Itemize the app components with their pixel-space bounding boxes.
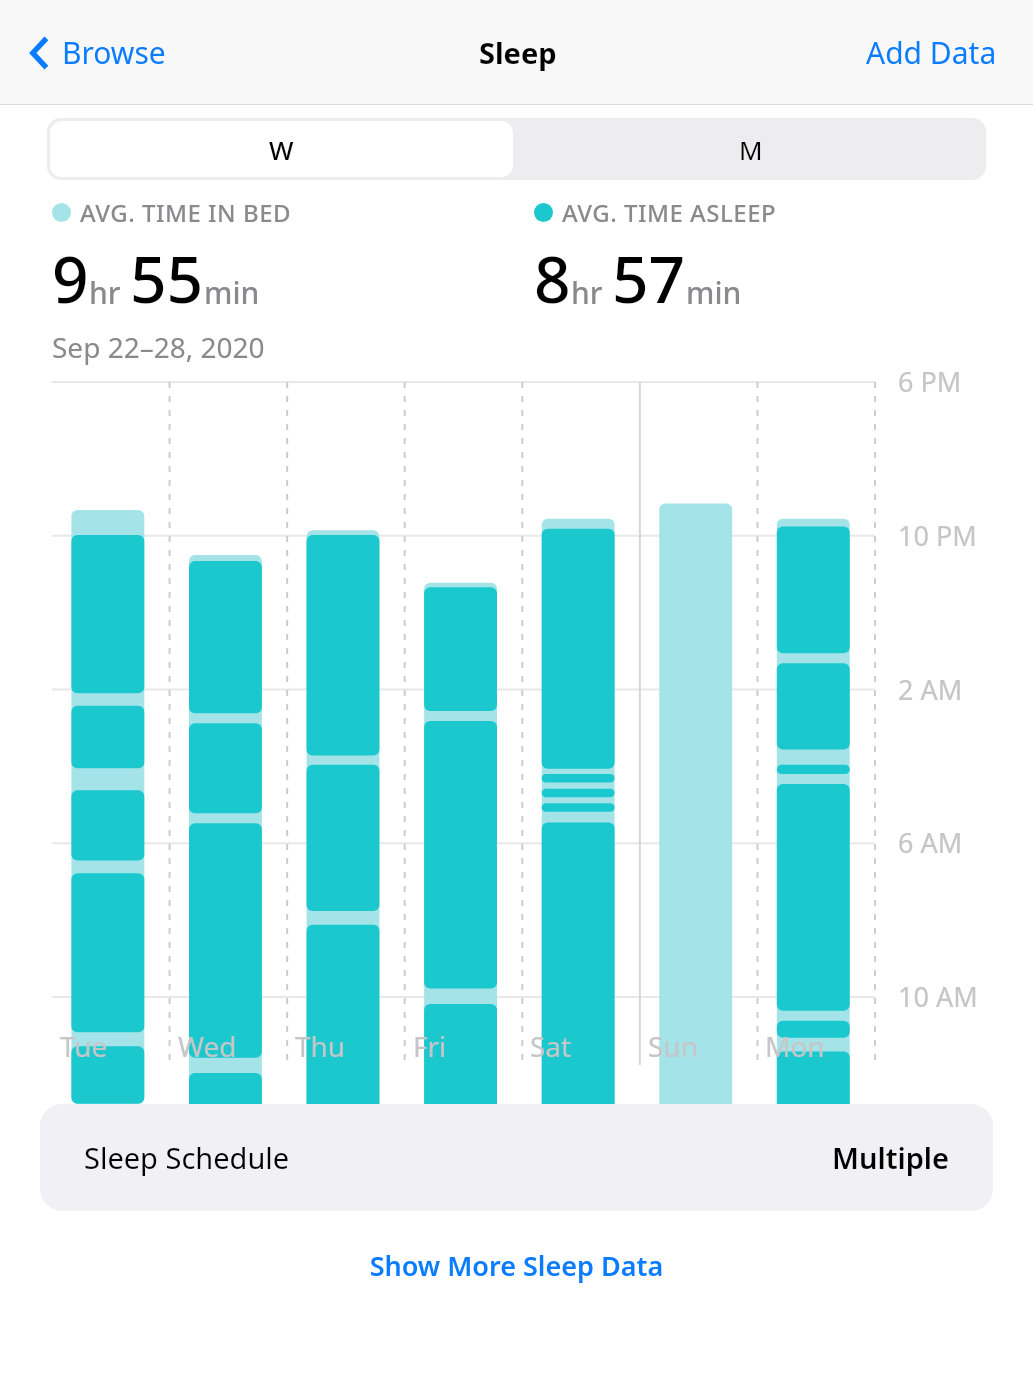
button[interactable]: Browse <box>30 26 176 79</box>
staticText: 55 <box>130 235 204 322</box>
staticText: 57 <box>612 235 686 322</box>
staticText: 9 <box>52 235 89 322</box>
staticText: W <box>269 132 294 167</box>
staticText: 6 PM <box>898 363 962 400</box>
staticText: Sleep <box>479 33 557 72</box>
staticText: 10 AM <box>898 978 978 1015</box>
staticText: AVG. TIME IN BED <box>80 196 292 229</box>
staticText: 8 <box>534 235 571 322</box>
staticText: M <box>739 132 763 167</box>
staticText: hr <box>89 272 121 313</box>
staticText: Sun <box>648 1027 698 1065</box>
button[interactable]: M <box>516 118 986 180</box>
staticText: hr <box>571 272 603 313</box>
button[interactable]: Show More Sleep Data <box>0 1241 1033 1290</box>
button[interactable]: Add Data <box>860 26 1003 79</box>
staticText: Sleep Schedule <box>84 1138 290 1177</box>
staticText: Browse <box>62 32 166 73</box>
staticText: 10 PM <box>898 517 977 554</box>
staticText: Add Data <box>866 32 997 73</box>
staticText: Fri <box>413 1027 447 1065</box>
staticText: Sep 22–28, 2020 <box>52 328 265 366</box>
button[interactable]: W <box>47 118 516 180</box>
staticText: 6 AM <box>898 824 963 861</box>
staticText: Show More Sleep Data <box>0 1247 1033 1284</box>
button[interactable]: Sleep Schedule <box>40 1104 993 1211</box>
staticText: Thu <box>295 1027 346 1065</box>
staticText: min <box>204 272 260 313</box>
staticText: Multiple <box>832 1138 949 1177</box>
staticText: min <box>686 272 742 313</box>
staticText: Tue <box>60 1027 108 1065</box>
staticText: Mon <box>765 1027 825 1065</box>
staticText: Wed <box>178 1027 237 1065</box>
staticText: Sat <box>530 1027 572 1065</box>
staticText: 2 AM <box>898 671 963 708</box>
staticText: AVG. TIME ASLEEP <box>562 196 777 229</box>
